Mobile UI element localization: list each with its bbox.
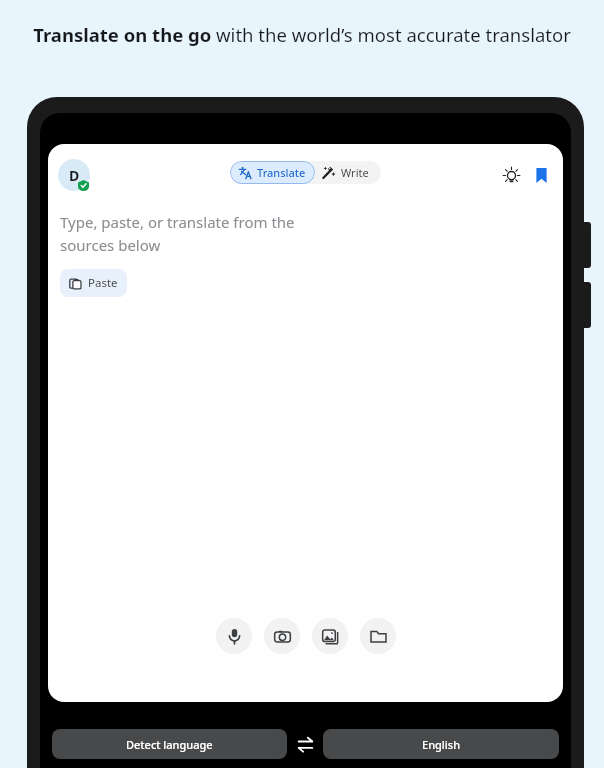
button[interactable]: Account — [58, 159, 90, 191]
button[interactable]: Translate — [230, 161, 315, 184]
button[interactable]: English — [323, 729, 559, 759]
button[interactable]: Camera translate — [264, 618, 300, 654]
staticText: D — [69, 166, 80, 185]
button[interactable]: Voice input — [216, 618, 252, 654]
button[interactable]: Tips — [496, 160, 526, 190]
staticText: Write — [341, 165, 369, 180]
button[interactable]: Paste — [60, 269, 127, 297]
staticText: Paste — [88, 275, 118, 291]
button[interactable]: Detect language — [52, 729, 287, 759]
staticText: English — [422, 737, 461, 752]
button[interactable]: Write — [315, 161, 381, 184]
button[interactable]: Translate document — [360, 618, 396, 654]
button[interactable]: Saved translations — [526, 160, 556, 190]
staticText: Translate on the go with the world’s mos… — [30, 22, 574, 47]
button[interactable]: Translate image — [312, 618, 348, 654]
staticText: Translate — [257, 165, 306, 180]
staticText: Type, paste, or translate from the sourc… — [60, 212, 295, 255]
button[interactable]: Swap languages — [287, 726, 323, 762]
staticText: Detect language — [126, 737, 213, 752]
